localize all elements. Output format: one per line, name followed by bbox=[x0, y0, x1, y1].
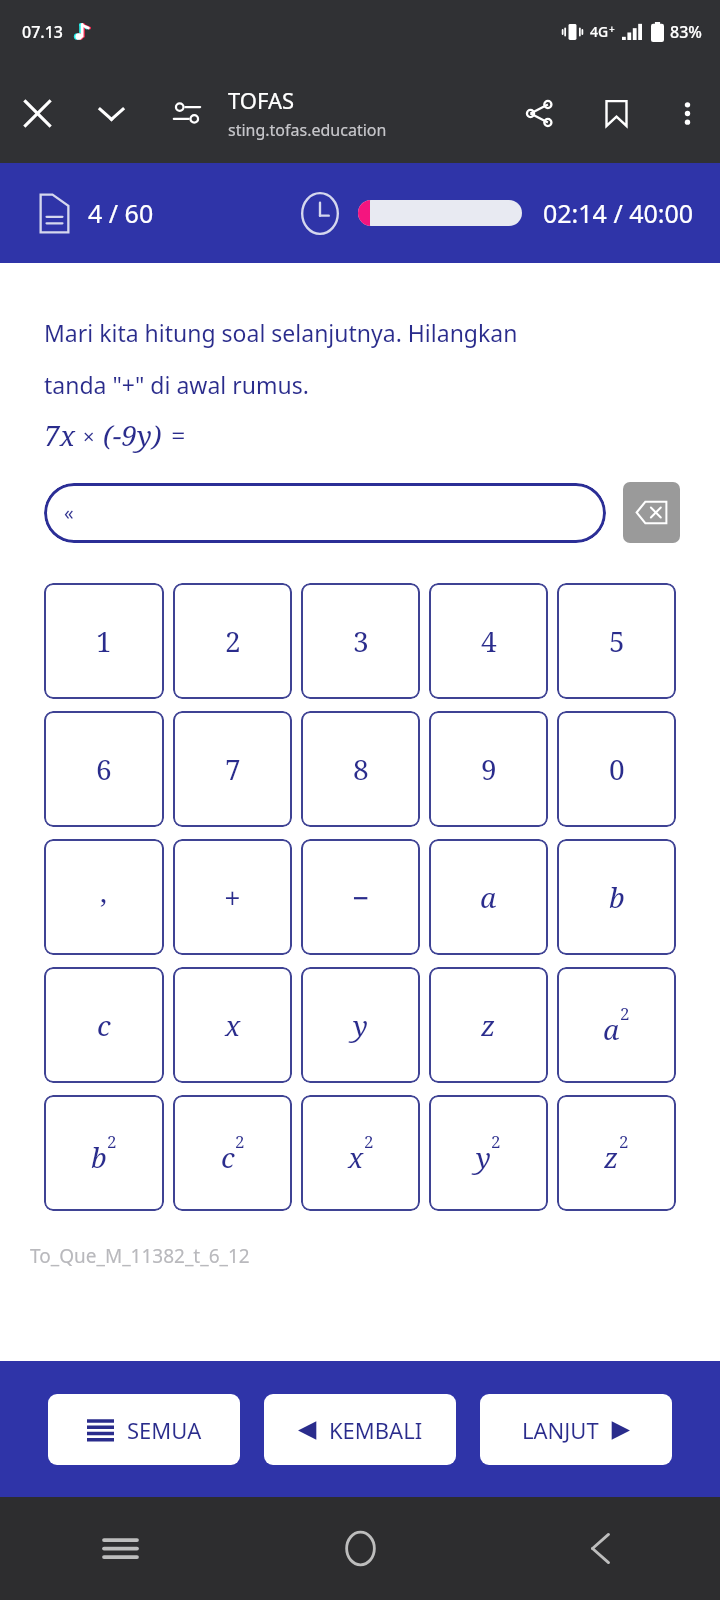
staticText: c bbox=[97, 1006, 111, 1044]
staticText: , bbox=[100, 873, 108, 911]
staticText: KEMBALI bbox=[329, 1415, 423, 1445]
staticText: SEMUA bbox=[127, 1415, 202, 1445]
button[interactable]: 5 bbox=[557, 583, 676, 699]
staticText: 2 bbox=[619, 1130, 629, 1153]
button[interactable]: − bbox=[301, 839, 420, 955]
button[interactable]: y bbox=[429, 1095, 548, 1211]
staticText: 9 bbox=[481, 750, 497, 788]
staticText: 2 bbox=[235, 1130, 245, 1153]
staticText: 2 bbox=[107, 1130, 117, 1153]
staticText: b bbox=[609, 878, 625, 916]
staticText: 02:14 / 40:00 bbox=[543, 196, 694, 230]
button[interactable]: « bbox=[44, 483, 606, 543]
button[interactable]: y bbox=[301, 967, 420, 1083]
staticText: 2 bbox=[620, 1002, 630, 1025]
staticText: 7 bbox=[225, 750, 241, 788]
button[interactable]: c bbox=[173, 1095, 292, 1211]
staticText: To_Que_M_11382_t_6_12 bbox=[30, 1243, 250, 1269]
staticText: 1 bbox=[96, 622, 112, 660]
staticText: sting.tofas.education bbox=[228, 119, 387, 141]
button[interactable]: SEMUA bbox=[48, 1394, 240, 1465]
staticText: (−9y) bbox=[103, 416, 162, 454]
button[interactable]: KEMBALI bbox=[264, 1394, 456, 1465]
staticText: Mari kita hitung soal selanjutnya. Hilan… bbox=[44, 317, 518, 348]
button[interactable]: Share bbox=[500, 63, 578, 163]
staticText: 4 / 60 bbox=[88, 196, 154, 230]
staticText: « bbox=[64, 500, 74, 526]
button[interactable]: z bbox=[429, 967, 548, 1083]
button[interactable]: Back bbox=[480, 1497, 720, 1600]
staticText: 07.13 bbox=[22, 21, 63, 43]
staticText: × bbox=[83, 423, 95, 450]
staticText: 4G bbox=[590, 22, 609, 41]
staticText: 2 bbox=[364, 1130, 374, 1153]
staticText: a bbox=[480, 878, 497, 916]
staticText: 2 bbox=[225, 622, 241, 660]
staticText: 3 bbox=[353, 622, 369, 660]
button[interactable]: Home bbox=[240, 1497, 480, 1600]
button[interactable]: Close bbox=[0, 63, 74, 163]
button[interactable]: b bbox=[557, 839, 676, 955]
staticText: + bbox=[609, 22, 615, 36]
button[interactable]: 9 bbox=[429, 711, 548, 827]
staticText: 0 bbox=[609, 750, 625, 788]
staticText: y bbox=[353, 1006, 368, 1044]
staticText: 6 bbox=[96, 750, 112, 788]
button[interactable]: Collapse bbox=[74, 63, 148, 163]
button[interactable]: Bookmark bbox=[578, 63, 654, 163]
staticText: b bbox=[91, 1138, 107, 1176]
staticText: x bbox=[348, 1138, 364, 1176]
staticText: 83% bbox=[670, 21, 702, 43]
button[interactable]: 3 bbox=[301, 583, 420, 699]
staticText: − bbox=[352, 877, 370, 918]
button[interactable]: , bbox=[44, 839, 164, 955]
staticText: c bbox=[221, 1138, 235, 1176]
staticText: + bbox=[224, 877, 241, 918]
button[interactable]: 2 bbox=[173, 583, 292, 699]
staticText: 5 bbox=[609, 622, 625, 660]
button[interactable]: + bbox=[173, 839, 292, 955]
staticText: 2 bbox=[491, 1130, 501, 1153]
button[interactable]: 0 bbox=[557, 711, 676, 827]
button[interactable]: x bbox=[301, 1095, 420, 1211]
button[interactable]: 1 bbox=[44, 583, 164, 699]
staticText: y bbox=[476, 1138, 491, 1176]
button[interactable]: c bbox=[44, 967, 164, 1083]
button[interactable]: Recent apps bbox=[0, 1497, 240, 1600]
button[interactable]: z bbox=[557, 1095, 676, 1211]
staticText: 4 bbox=[481, 622, 497, 660]
staticText: x bbox=[225, 1006, 241, 1044]
staticText: z bbox=[604, 1138, 619, 1176]
staticText: 8 bbox=[353, 750, 369, 788]
button[interactable]: 6 bbox=[44, 711, 164, 827]
staticText: TOFAS bbox=[228, 85, 295, 115]
staticText: = bbox=[171, 417, 186, 452]
staticText: a bbox=[603, 1010, 620, 1048]
button[interactable]: 4 bbox=[429, 583, 548, 699]
button[interactable]: b bbox=[44, 1095, 164, 1211]
button[interactable]: LANJUT bbox=[480, 1394, 672, 1465]
button[interactable]: More options bbox=[654, 63, 720, 163]
staticText: 7x bbox=[44, 416, 75, 454]
button[interactable]: a bbox=[429, 839, 548, 955]
button[interactable]: 7 bbox=[173, 711, 292, 827]
button[interactable]: 8 bbox=[301, 711, 420, 827]
button[interactable]: Page info bbox=[148, 63, 226, 163]
button[interactable]: x bbox=[173, 967, 292, 1083]
button[interactable]: Backspace bbox=[623, 482, 680, 543]
staticText: z bbox=[481, 1006, 496, 1044]
staticText: tanda "+" di awal rumus. bbox=[44, 369, 309, 400]
staticText: LANJUT bbox=[522, 1415, 599, 1445]
button[interactable]: a bbox=[557, 967, 676, 1083]
